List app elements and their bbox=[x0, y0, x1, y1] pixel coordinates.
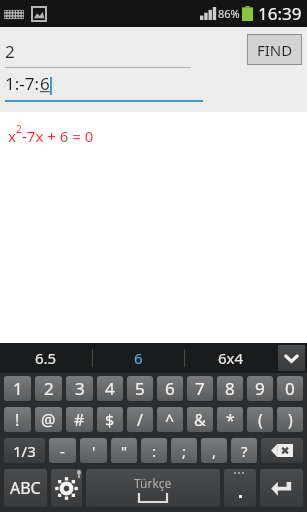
staticText: Türkçe bbox=[134, 475, 172, 491]
button[interactable]: ) bbox=[277, 407, 303, 432]
staticText: -7x + 6 = 0 bbox=[22, 126, 94, 146]
button[interactable]: FIND bbox=[248, 35, 301, 64]
staticText: * bbox=[226, 409, 235, 431]
staticText: $ bbox=[105, 409, 115, 431]
staticText: 6 bbox=[165, 377, 175, 400]
button[interactable]: 1/3 bbox=[4, 438, 45, 463]
staticText: ( bbox=[258, 409, 263, 431]
button[interactable]: Expand suggestions bbox=[278, 345, 305, 371]
button[interactable]: ; bbox=[171, 438, 197, 463]
button[interactable]: 4 bbox=[97, 376, 123, 401]
staticText: FIND bbox=[257, 40, 293, 60]
staticText: 5 bbox=[135, 377, 145, 400]
button[interactable]: # bbox=[66, 407, 93, 432]
staticText: 1 bbox=[13, 377, 23, 400]
staticText: & bbox=[194, 409, 206, 431]
staticText: # bbox=[74, 409, 85, 431]
button[interactable]: @ bbox=[35, 407, 62, 432]
button[interactable]: Enter bbox=[260, 469, 303, 507]
staticText: 6 bbox=[40, 72, 50, 95]
staticText: " bbox=[121, 441, 128, 461]
button[interactable]: Delete bbox=[261, 438, 303, 463]
staticText: , bbox=[212, 441, 217, 461]
button[interactable]: 2 bbox=[5, 40, 191, 68]
button[interactable]: 2 bbox=[35, 376, 62, 401]
button[interactable]: " bbox=[111, 438, 137, 463]
button[interactable]: Settings bbox=[51, 469, 82, 507]
staticText: 4 bbox=[105, 377, 115, 400]
staticText: ; bbox=[182, 441, 187, 461]
button[interactable]: ( bbox=[247, 407, 273, 432]
staticText: - bbox=[60, 441, 65, 461]
staticText: @ bbox=[41, 409, 56, 431]
staticText: 1/3 bbox=[13, 441, 36, 461]
staticText: ? bbox=[241, 441, 248, 461]
staticText: ' bbox=[92, 441, 96, 461]
staticText: 16:39 bbox=[258, 2, 302, 25]
staticText: 0 bbox=[285, 377, 295, 400]
button[interactable]: ^ bbox=[157, 407, 183, 432]
staticText: 2 bbox=[16, 122, 22, 136]
staticText: 86% bbox=[218, 6, 240, 21]
staticText: 6x4 bbox=[218, 348, 244, 368]
staticText: 9 bbox=[255, 377, 265, 400]
staticText: ^ bbox=[165, 409, 175, 431]
button[interactable]: ! bbox=[4, 407, 31, 432]
button[interactable]: 5 bbox=[127, 376, 153, 401]
button[interactable]: 6 bbox=[93, 343, 184, 373]
button[interactable]: : bbox=[141, 438, 167, 463]
button[interactable]: 0 bbox=[277, 376, 303, 401]
staticText: 2 bbox=[5, 40, 15, 63]
button[interactable]: 7 bbox=[187, 376, 213, 401]
button[interactable]: 9 bbox=[247, 376, 273, 401]
staticText: 8 bbox=[225, 377, 235, 400]
button[interactable]: ' bbox=[80, 438, 107, 463]
button[interactable]: * bbox=[217, 407, 243, 432]
button[interactable]: , bbox=[201, 438, 227, 463]
button[interactable]: 6.5 bbox=[0, 343, 92, 373]
staticText: 3 bbox=[75, 377, 85, 400]
button[interactable]: 8 bbox=[217, 376, 243, 401]
button[interactable]: & bbox=[187, 407, 213, 432]
button[interactable]: - bbox=[49, 438, 76, 463]
staticText: 7 bbox=[195, 377, 205, 400]
button[interactable]: 3 bbox=[66, 376, 93, 401]
button[interactable]: / bbox=[127, 407, 153, 432]
button[interactable]: Period bbox=[224, 469, 256, 507]
button[interactable]: Space bbox=[86, 469, 220, 507]
staticText: : bbox=[152, 441, 157, 461]
button[interactable]: 1 bbox=[4, 376, 31, 401]
button[interactable]: 6x4 bbox=[185, 343, 276, 373]
staticText: ) bbox=[288, 409, 293, 431]
button[interactable]: ? bbox=[231, 438, 257, 463]
staticText: 1:-7: bbox=[5, 72, 40, 95]
button[interactable]: 6 bbox=[157, 376, 183, 401]
staticText: ! bbox=[15, 409, 20, 431]
button[interactable]: ABC bbox=[4, 469, 47, 507]
button[interactable]: 1:-7: bbox=[5, 72, 203, 102]
staticText: / bbox=[137, 409, 143, 431]
staticText: ABC bbox=[10, 477, 41, 499]
staticText: x bbox=[8, 126, 16, 146]
button[interactable]: $ bbox=[97, 407, 123, 432]
staticText: 6 bbox=[134, 348, 143, 368]
staticText: 6.5 bbox=[35, 348, 57, 368]
staticText: 2 bbox=[44, 377, 54, 400]
